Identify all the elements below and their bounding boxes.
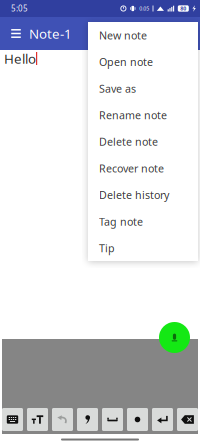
staticText: 80 bbox=[180, 5, 186, 12]
button[interactable]: Rename note bbox=[88, 102, 198, 128]
button[interactable]: Delete history bbox=[88, 182, 198, 208]
button[interactable]: Space bbox=[102, 408, 123, 431]
staticText: Delete history bbox=[99, 188, 169, 202]
staticText: Hello bbox=[4, 50, 36, 67]
staticText: 5:05 bbox=[11, 3, 28, 14]
staticText: Rename note bbox=[99, 108, 167, 122]
button[interactable]: Tag note bbox=[88, 208, 198, 235]
staticText: 0.05 bbox=[139, 5, 149, 12]
button[interactable]: Text size bbox=[27, 408, 48, 431]
staticText: Note-1 bbox=[29, 25, 72, 42]
button[interactable]: Keyboard bbox=[2, 408, 23, 431]
button[interactable]: Save as bbox=[88, 75, 198, 102]
staticText: Recover note bbox=[99, 161, 164, 175]
button[interactable]: Open note bbox=[88, 49, 198, 75]
staticText: Tag note bbox=[99, 214, 143, 229]
staticText: Open note bbox=[99, 55, 153, 69]
staticText: Save as bbox=[99, 81, 136, 96]
button[interactable]: Return bbox=[152, 408, 173, 431]
button[interactable]: Comma bbox=[77, 408, 98, 431]
button[interactable]: New note bbox=[88, 22, 198, 49]
staticText: Delete note bbox=[99, 135, 158, 149]
button[interactable]: Undo bbox=[52, 408, 73, 431]
button[interactable]: Backspace bbox=[177, 408, 198, 431]
button[interactable]: Period bbox=[127, 408, 148, 431]
staticText: New note bbox=[99, 28, 147, 42]
button[interactable]: Recover note bbox=[88, 155, 198, 182]
button[interactable]: Tip bbox=[88, 235, 198, 261]
button[interactable]: Delete note bbox=[88, 128, 198, 155]
button[interactable]: Navigation menu bbox=[6, 22, 26, 44]
staticText: Tip bbox=[99, 241, 115, 255]
